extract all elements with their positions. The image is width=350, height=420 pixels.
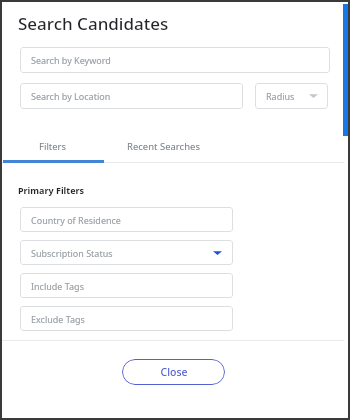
button[interactable]: Search by Keyword [20, 47, 330, 73]
button[interactable]: Search by Location [20, 83, 243, 109]
staticText: Search by Location [31, 90, 111, 102]
staticText: Search Candidates [18, 12, 169, 35]
staticText: Country of Residence [31, 214, 121, 226]
button[interactable]: Close [122, 359, 225, 385]
staticText: Primary Filters [18, 184, 85, 196]
staticText: Search by Keyword [31, 54, 111, 66]
button[interactable]: Country of Residence [20, 207, 233, 232]
button[interactable]: Exclude Tags [20, 306, 233, 331]
button[interactable]: Subscription Status [20, 240, 233, 265]
staticText: Exclude Tags [31, 313, 85, 325]
button[interactable]: Filters [2, 132, 103, 160]
staticText: Filters [39, 140, 67, 153]
button[interactable]: Radius [255, 83, 328, 109]
button[interactable]: Include Tags [20, 273, 233, 298]
staticText: Recent Searches [127, 140, 200, 153]
staticText: Subscription Status [31, 247, 113, 259]
button[interactable]: Recent Searches [103, 132, 223, 160]
staticText: Close [160, 365, 188, 379]
staticText: Radius [266, 90, 295, 102]
staticText: Include Tags [31, 280, 84, 292]
